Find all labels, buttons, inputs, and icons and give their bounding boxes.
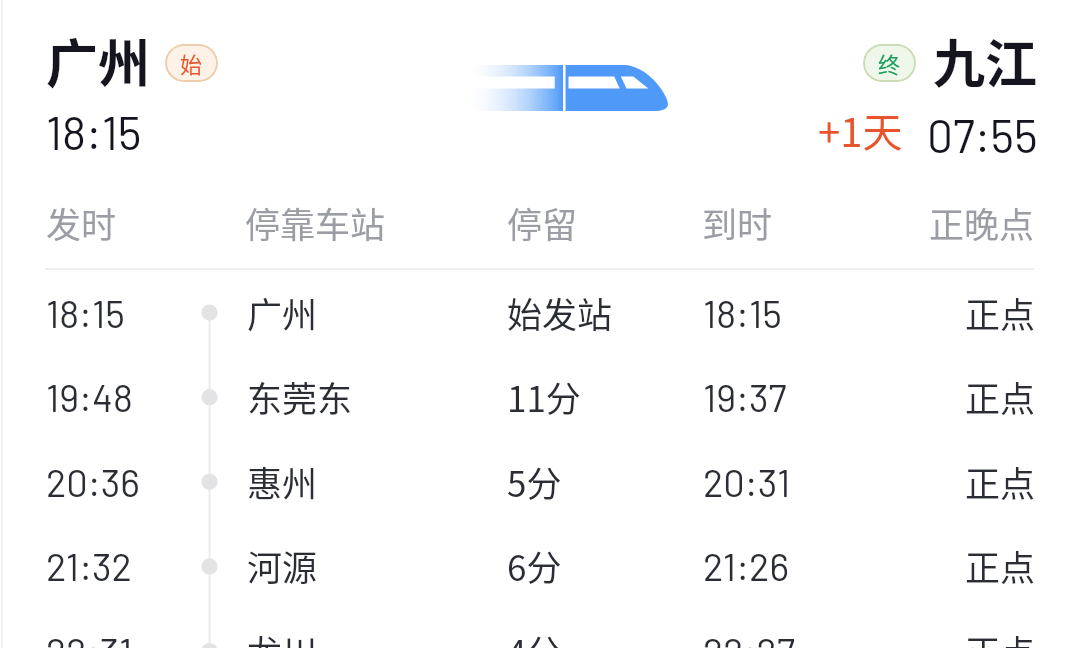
staticText: 20:36: [46, 459, 140, 505]
button[interactable]: 22:31: [0, 609, 1076, 648]
button[interactable]: 终: [863, 44, 916, 82]
staticText: 始: [180, 47, 203, 79]
staticText: 18:15: [703, 290, 782, 336]
staticText: 5分: [507, 456, 562, 507]
staticText: 4分: [507, 625, 562, 648]
staticText: 广州: [247, 287, 318, 338]
other: 高铁列车: [470, 65, 667, 111]
button[interactable]: 20:36: [0, 440, 1076, 524]
staticText: 东莞东: [247, 371, 353, 422]
button[interactable]: 始: [165, 44, 218, 82]
staticText: 07:55: [927, 107, 1038, 162]
staticText: 到时: [702, 197, 773, 248]
staticText: 始发站: [507, 287, 613, 338]
staticText: 19:37: [703, 374, 787, 420]
staticText: 18:15: [46, 290, 125, 336]
staticText: 22:27: [703, 628, 795, 648]
staticText: 22:31: [46, 628, 133, 648]
staticText: 惠州: [247, 456, 318, 507]
staticText: +1天: [818, 101, 903, 159]
staticText: 停靠车站: [245, 197, 386, 248]
button[interactable]: 18:15: [0, 271, 1076, 355]
staticText: 停留: [507, 197, 578, 248]
staticText: 正点: [965, 540, 1036, 591]
staticText: 正点: [965, 456, 1036, 507]
staticText: 正点: [965, 625, 1036, 648]
staticText: 正点: [965, 287, 1036, 338]
staticText: 6分: [507, 540, 562, 591]
staticText: 正点: [965, 371, 1036, 422]
staticText: 龙川: [247, 625, 318, 648]
button[interactable]: 广州: [46, 23, 151, 98]
staticText: 广州: [46, 23, 151, 98]
staticText: 终: [878, 47, 901, 79]
staticText: 21:32: [46, 543, 132, 589]
staticText: 河源: [247, 540, 318, 591]
staticText: 20:31: [703, 459, 791, 505]
staticText: 18:15: [46, 104, 142, 159]
staticText: 21:26: [703, 543, 789, 589]
staticText: 正晚点: [929, 197, 1035, 248]
button[interactable]: 九江: [933, 23, 1038, 98]
button[interactable]: 19:48: [0, 355, 1076, 439]
staticText: 19:48: [46, 374, 133, 420]
staticText: 发时: [46, 197, 117, 248]
staticText: 11分: [507, 371, 581, 422]
staticText: 九江: [933, 23, 1038, 98]
button[interactable]: 21:32: [0, 524, 1076, 608]
